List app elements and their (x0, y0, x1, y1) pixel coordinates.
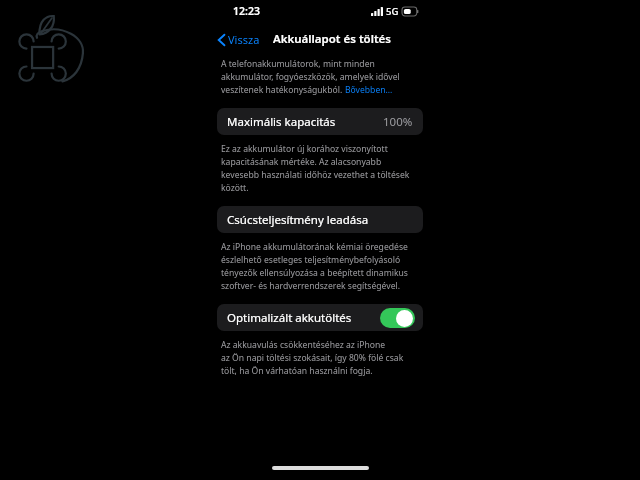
staticText: az Ön napi töltési szokásait, így 80% fö… (221, 352, 421, 364)
staticText: Ez az akkumulátor új korához viszonyítot… (221, 143, 388, 155)
staticText: között. (221, 182, 249, 194)
button[interactable]: Optimalizált akkutöltés (217, 304, 423, 331)
staticText: Az akkuavulás csökkentéséhez az iPhone m… (221, 339, 421, 351)
staticText: Maximális kapacitás (227, 114, 336, 130)
staticText: akkumulátor, fogyóeszközök, amelyek időv… (221, 71, 400, 83)
staticText: szoftver- és hardverrendszerek segítségé… (221, 280, 401, 292)
staticText: kapacitásának mértéke. Az alacsonyabb ka… (221, 156, 421, 168)
staticText: Vissza (228, 32, 260, 47)
button[interactable]: Optimalizált akkutöltés kapcsoló (380, 308, 415, 328)
staticText: Optimalizált akkutöltés (227, 310, 352, 326)
staticText: 100% (383, 114, 413, 130)
staticText: A telefonakkumulátorok, mint minden újra… (221, 58, 421, 70)
button[interactable]: Vissza (215, 30, 263, 49)
staticText: kevesebb használati időhöz vezethet a tö… (221, 169, 410, 181)
staticText: 12:23 (233, 4, 260, 18)
staticText: tényezők ellensúlyozása a beépített dina… (221, 267, 408, 279)
staticText: tölt, ha Ön várhatóan használni fogja. (221, 365, 373, 377)
button[interactable]: Csúcsteljesítmény leadása (217, 206, 423, 233)
staticText: észlelhető esetleges teljesítménybefolyá… (221, 254, 401, 266)
staticText: Az iPhone akkumulátorának kémiai öregedé… (221, 241, 421, 253)
button[interactable]: Maximális kapacitás (217, 108, 423, 135)
staticText: Akkuállapot és töltés (273, 31, 391, 47)
staticText: Bővebben… (345, 84, 393, 96)
staticText: Csúcsteljesítmény leadása (227, 212, 369, 228)
staticText: 5G (386, 5, 399, 18)
button[interactable]: Bővebben… (345, 84, 393, 96)
staticText: veszítenek hatékonyságukból. (221, 84, 345, 96)
